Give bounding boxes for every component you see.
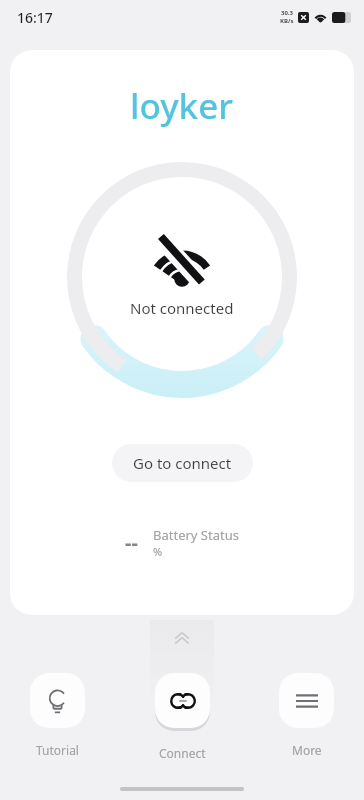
staticText: % [153, 544, 163, 559]
other: Tutorial [46, 689, 69, 712]
button[interactable]: Go to connect [112, 444, 253, 482]
staticText: Tutorial [36, 742, 79, 758]
other: More [296, 693, 318, 709]
staticText: 16:17 [17, 8, 53, 27]
staticText: Go to connect [133, 453, 232, 473]
staticText: 30.3 [281, 9, 293, 17]
staticText: loyker [130, 82, 234, 130]
staticText: KB/s [280, 17, 294, 25]
button[interactable]: Tutorial [30, 673, 85, 758]
staticText: Connect [159, 745, 206, 761]
button[interactable]: Connect [155, 673, 210, 761]
button[interactable]: More [279, 673, 334, 758]
staticText: More [292, 742, 322, 758]
other: Wi-Fi off [151, 237, 213, 287]
other: Connect [170, 693, 196, 709]
staticText: -- [125, 529, 138, 556]
staticText: Not connected [130, 298, 234, 318]
staticText: Battery Status [153, 526, 239, 544]
